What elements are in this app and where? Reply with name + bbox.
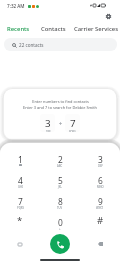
staticText: 1 bbox=[18, 154, 23, 165]
staticText: PQRS bbox=[17, 206, 24, 210]
button[interactable]: 9 bbox=[80, 193, 120, 214]
staticText: # bbox=[97, 214, 104, 227]
staticText: DEF bbox=[98, 164, 103, 168]
staticText: ABC bbox=[57, 164, 63, 168]
staticText: Carrier Services bbox=[74, 25, 119, 33]
staticText: 9 bbox=[98, 196, 103, 207]
staticText: 0 bbox=[58, 217, 63, 228]
staticText: WXYZ bbox=[96, 206, 104, 210]
staticText: 22 contacts bbox=[19, 42, 44, 48]
button[interactable]: * bbox=[0, 214, 40, 235]
staticText: PQRS bbox=[69, 130, 76, 132]
staticText: 4 bbox=[18, 175, 23, 186]
staticText: + bbox=[59, 227, 61, 231]
staticText: Recents bbox=[7, 25, 30, 33]
button[interactable]: 1 bbox=[0, 151, 40, 172]
button[interactable]: 6 bbox=[80, 172, 120, 193]
staticText: Enter 3 and 7 to search for Debbie Smith bbox=[23, 105, 97, 110]
staticText: Contacts bbox=[41, 25, 66, 33]
button[interactable]: Hide dialpad bbox=[12, 236, 28, 252]
button[interactable]: 3 bbox=[80, 151, 120, 172]
button[interactable]: Carrier Services bbox=[74, 23, 119, 35]
button[interactable]: 7 bbox=[65, 114, 80, 132]
button[interactable]: 3 bbox=[40, 114, 55, 132]
button[interactable]: 22 contacts bbox=[4, 38, 117, 51]
staticText: 6 bbox=[98, 175, 103, 186]
staticText: Enter numbers to find contacts bbox=[32, 99, 89, 104]
staticText: 8 bbox=[58, 196, 63, 207]
staticText: * bbox=[17, 214, 23, 227]
staticText: DEF bbox=[46, 130, 51, 132]
staticText: MNO bbox=[97, 185, 104, 189]
button[interactable]: Recents bbox=[7, 23, 30, 35]
staticText: 3 bbox=[98, 154, 103, 165]
staticText: JKL bbox=[58, 185, 62, 189]
staticText: 7:32 AM bbox=[7, 3, 25, 9]
button[interactable]: 0 bbox=[40, 214, 80, 235]
button[interactable]: 2 bbox=[40, 151, 80, 172]
button[interactable]: # bbox=[80, 214, 120, 235]
staticText: 7 bbox=[18, 196, 23, 207]
staticText: 7 bbox=[70, 117, 76, 130]
button[interactable]: 5 bbox=[40, 172, 80, 193]
button[interactable]: Call bbox=[50, 234, 70, 254]
button[interactable]: Backspace bbox=[92, 236, 108, 252]
button[interactable]: 7 bbox=[0, 193, 40, 214]
staticText: TUV bbox=[57, 206, 63, 210]
button[interactable]: Settings bbox=[101, 9, 115, 23]
staticText: GHI bbox=[18, 185, 23, 189]
button[interactable]: Contacts bbox=[41, 23, 66, 35]
button[interactable]: 8 bbox=[40, 193, 80, 214]
staticText: 2 bbox=[58, 154, 63, 165]
staticText: 5 bbox=[58, 175, 63, 186]
button[interactable]: 4 bbox=[0, 172, 40, 193]
staticText: 3 bbox=[45, 117, 51, 130]
